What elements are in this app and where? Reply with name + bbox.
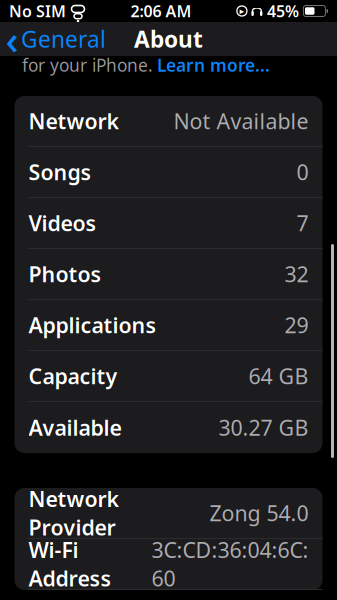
- staticText: 7: [296, 209, 308, 237]
- staticText: Network: [28, 107, 119, 135]
- staticText: Videos: [28, 209, 96, 237]
- button[interactable]: Applications: [14, 300, 322, 351]
- staticText: No SIM: [9, 0, 66, 22]
- button[interactable]: Videos: [14, 198, 322, 249]
- staticText: Not Available: [173, 107, 308, 135]
- staticText: 45%: [267, 0, 299, 22]
- button[interactable]: Learn more...: [157, 53, 270, 76]
- staticText: Capacity: [28, 362, 117, 390]
- staticText: 30.27 GB: [218, 413, 308, 442]
- staticText: Songs: [28, 158, 91, 186]
- staticText: Network Provider: [28, 485, 119, 541]
- button[interactable]: Wi-Fi Address: [14, 539, 322, 590]
- staticText: Applications: [28, 311, 156, 339]
- staticText: Photos: [28, 260, 101, 288]
- button[interactable]: Photos: [14, 249, 322, 300]
- button[interactable]: Network Provider: [14, 488, 322, 539]
- button[interactable]: Capacity: [14, 351, 322, 402]
- staticText: ▸: [239, 6, 244, 16]
- staticText: ‹: [5, 12, 18, 65]
- button[interactable]: Available: [14, 402, 322, 453]
- button[interactable]: Network: [14, 96, 322, 147]
- staticText: About: [134, 24, 203, 54]
- button[interactable]: Songs: [14, 147, 322, 198]
- staticText: General: [21, 24, 106, 54]
- staticText: 64 GB: [248, 362, 308, 390]
- staticText: 32: [284, 260, 308, 288]
- staticText: Wi-Fi Address: [28, 536, 111, 592]
- staticText: Learn more...: [157, 53, 270, 76]
- staticText: 2:06 AM: [130, 0, 191, 22]
- staticText: Available: [28, 413, 121, 442]
- staticText: for your iPhone.: [22, 53, 153, 76]
- staticText: Zong 54.0: [209, 499, 308, 527]
- staticText: 29: [284, 311, 308, 339]
- button[interactable]: ‹: [0, 20, 106, 58]
- staticText: 0: [296, 158, 308, 186]
- staticText: 3C:CD:36:04:6C:60: [151, 536, 308, 592]
